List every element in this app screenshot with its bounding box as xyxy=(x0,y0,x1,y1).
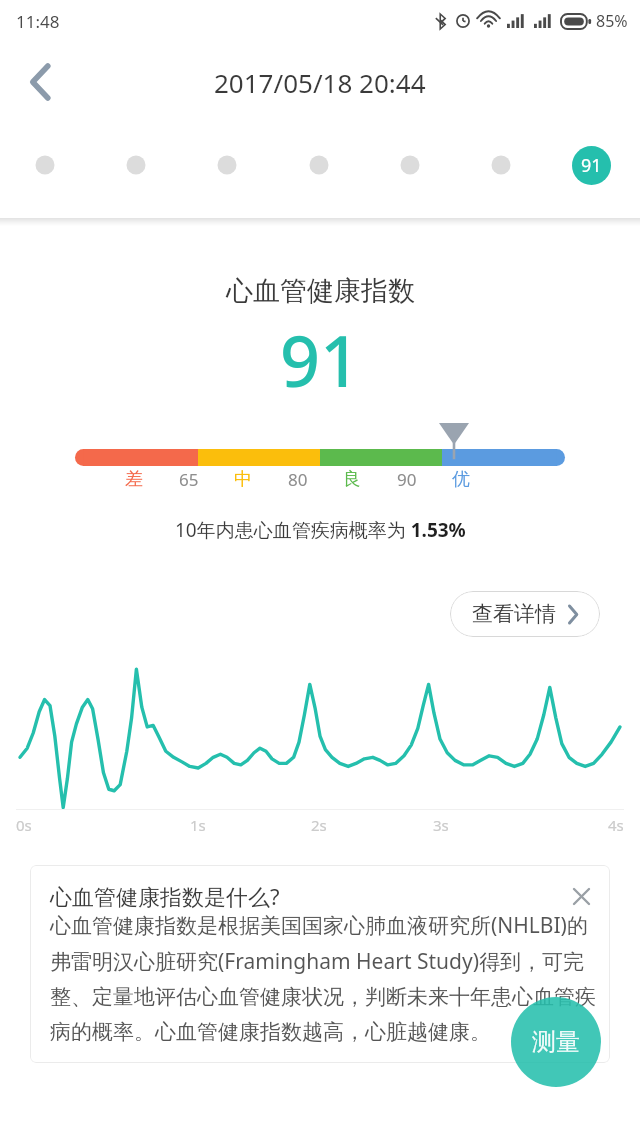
staticText: 3s xyxy=(433,815,449,835)
button[interactable]: Close xyxy=(566,881,596,911)
staticText: 0s xyxy=(16,815,32,835)
staticText: 心血管健康指数 xyxy=(226,274,415,308)
staticText: 91 xyxy=(581,153,602,178)
staticText: 2s xyxy=(311,815,327,835)
staticText: 90 xyxy=(397,468,417,491)
staticText: 优 xyxy=(452,468,470,491)
button[interactable]: 91 xyxy=(572,146,611,185)
staticText: 差 xyxy=(125,468,143,491)
staticText: 中 xyxy=(234,468,252,491)
button[interactable]: 测量 xyxy=(511,997,601,1087)
staticText: 心血管健康指数是根据美国国家心肺血液研究所(NHLBI)的弗雷明汉心脏研究(Fr… xyxy=(50,911,596,1045)
staticText: 良 xyxy=(343,468,361,491)
staticText: 91 xyxy=(280,312,361,407)
button[interactable]: 查看详情 xyxy=(450,591,600,637)
staticText: 心血管健康指数是什么? xyxy=(50,881,566,911)
staticText: 11:48 xyxy=(16,10,60,33)
staticText: 80 xyxy=(288,468,308,491)
staticText: 1s xyxy=(190,815,206,835)
staticText: 10年内患心血管疾病概率为 1.53% xyxy=(175,517,466,543)
button[interactable]: Back xyxy=(12,54,68,110)
staticText: 85% xyxy=(596,10,628,32)
staticText: 2017/05/18 20:44 xyxy=(214,65,426,100)
staticText: 测量 xyxy=(532,1027,580,1057)
staticText: 查看详情 xyxy=(472,601,556,627)
staticText: 4s xyxy=(608,815,624,835)
staticText: 65 xyxy=(179,468,199,491)
